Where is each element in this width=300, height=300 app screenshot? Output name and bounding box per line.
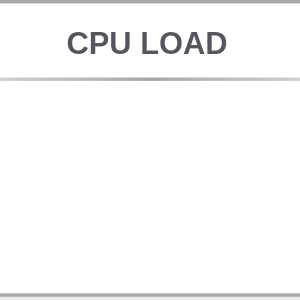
staticText: CPU LOAD bbox=[0, 26, 297, 61]
button[interactable]: CPU LOAD bbox=[0, 0, 300, 78]
